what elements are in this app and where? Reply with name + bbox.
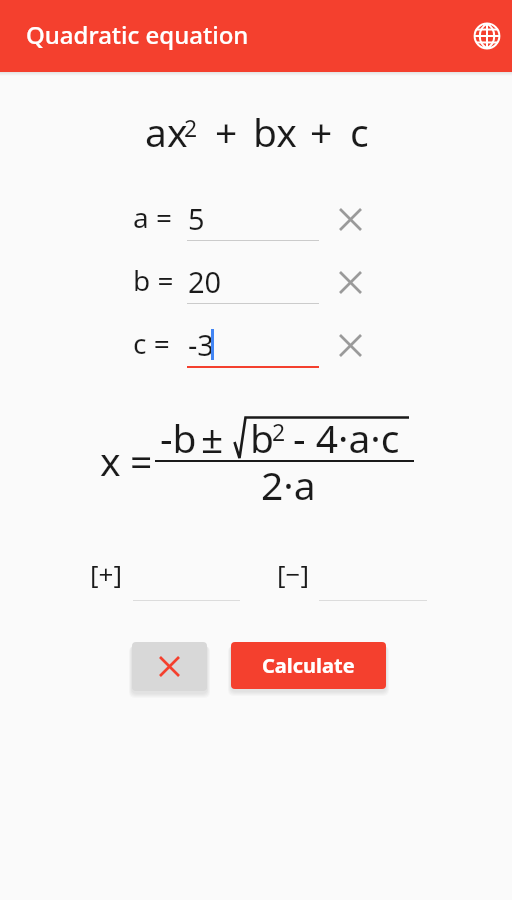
button[interactable]: Clear a = [332, 201, 368, 237]
staticText: + [215, 105, 238, 158]
button[interactable]: Clear all [132, 642, 207, 691]
button[interactable]: -3 [187, 322, 320, 368]
staticText: = [130, 434, 153, 487]
staticText: c = [133, 324, 170, 362]
staticText: 5 [188, 199, 205, 238]
staticText: ax [145, 105, 188, 158]
staticText: a = [133, 198, 173, 236]
staticText: 2 [184, 112, 198, 143]
staticText: 20 [188, 262, 222, 301]
staticText: [−] [277, 556, 309, 591]
staticText: ± [201, 411, 224, 464]
staticText: b [250, 411, 274, 464]
staticText: -b [160, 411, 197, 464]
button[interactable]: 20 [187, 259, 320, 305]
staticText: Calculate [262, 652, 355, 679]
staticText: 2 [272, 416, 286, 447]
staticText: 2·a [261, 458, 316, 511]
staticText: bx [253, 105, 297, 158]
staticText: b = [133, 261, 174, 299]
staticText: + [310, 105, 333, 158]
staticText: -3 [188, 325, 214, 364]
staticText: x [100, 434, 121, 487]
staticText: [+] [90, 556, 122, 591]
button[interactable]: Calculate [231, 642, 386, 689]
staticText: Quadratic equation [26, 18, 249, 51]
button[interactable]: Clear b = [332, 264, 368, 300]
staticText: c [350, 105, 369, 158]
staticText: - 4·a·c [293, 411, 400, 464]
button[interactable]: 5 [187, 196, 320, 242]
button[interactable]: Language [463, 12, 511, 60]
button[interactable]: Clear c = [332, 327, 368, 363]
